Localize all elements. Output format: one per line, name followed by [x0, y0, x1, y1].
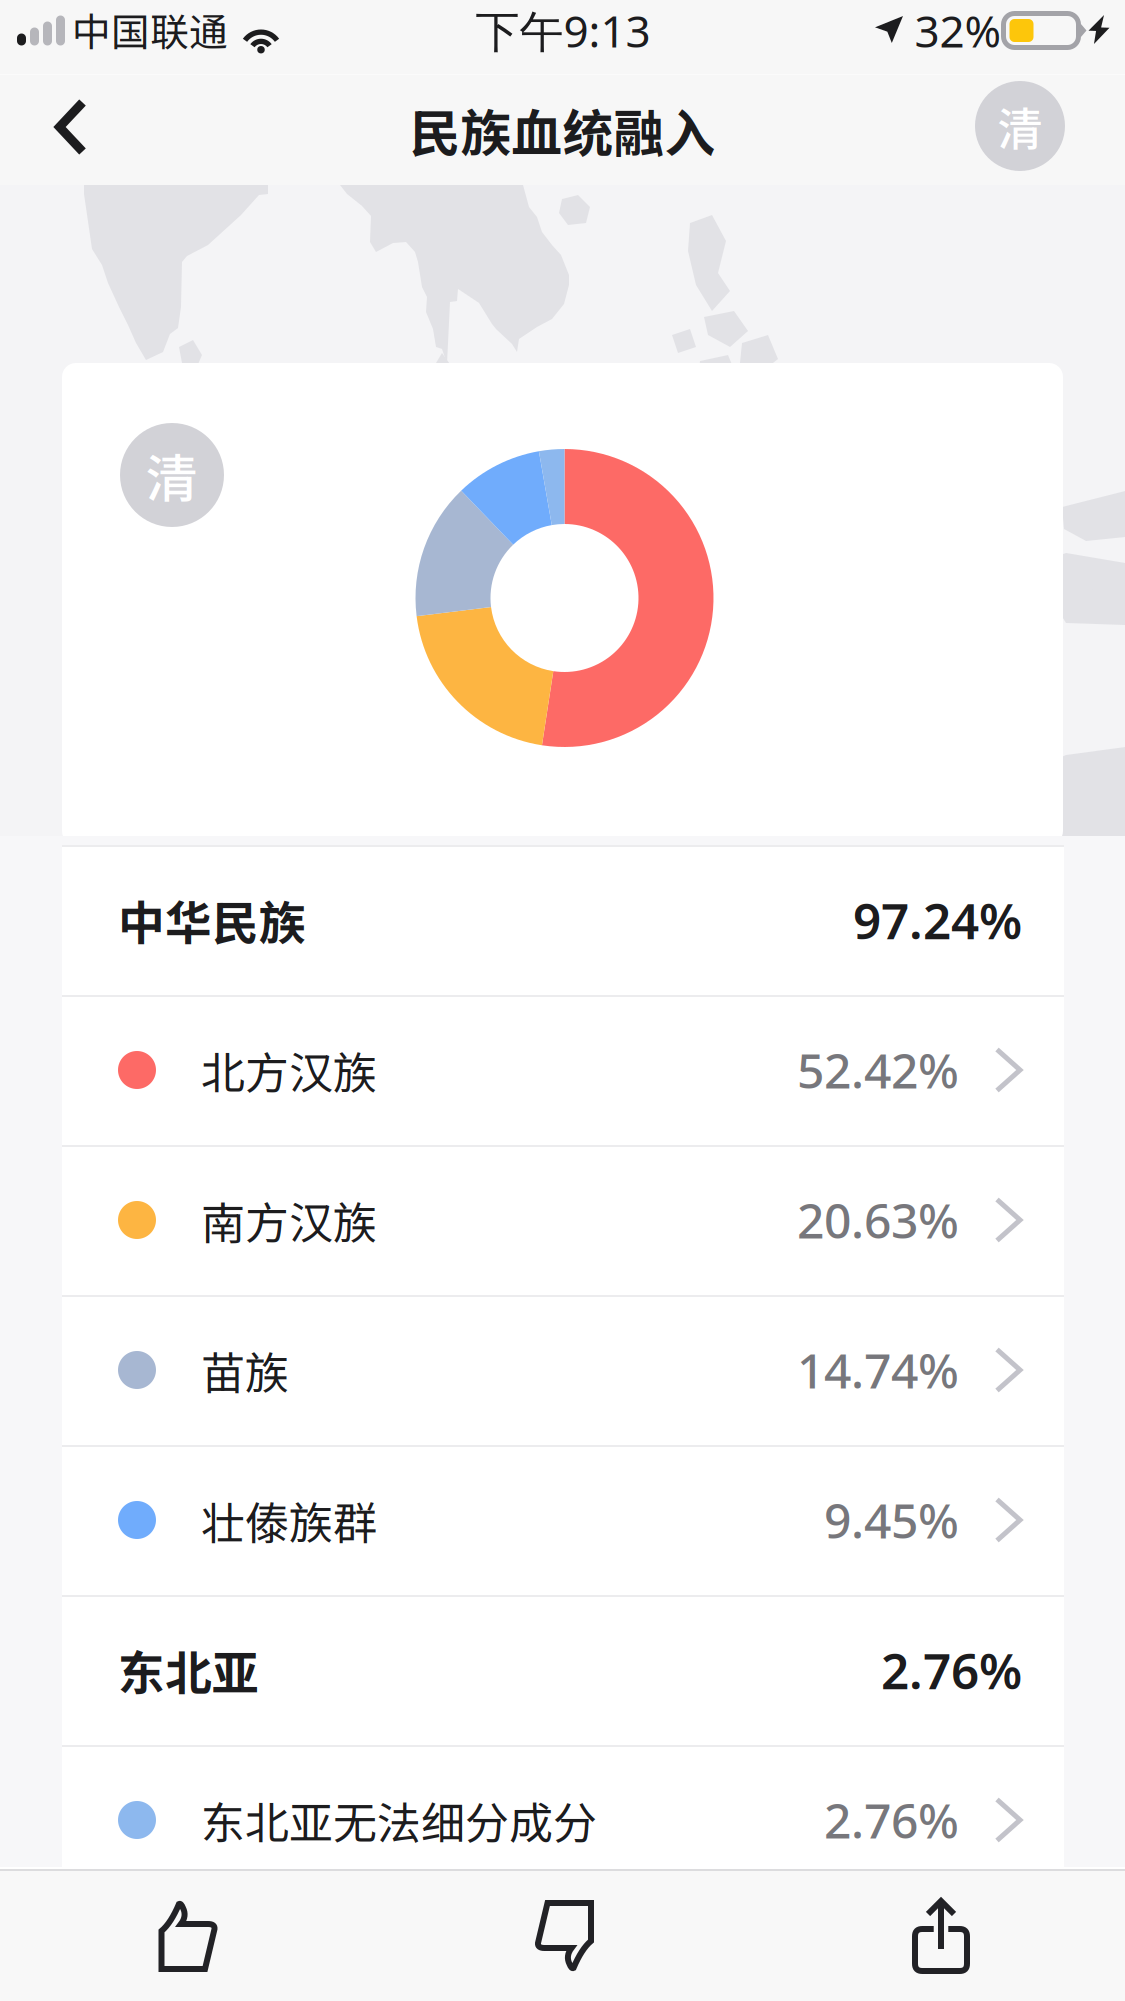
button[interactable]: Dislike: [458, 1870, 670, 2001]
staticText: 苗族: [201, 1338, 289, 1402]
staticText: 中国联通: [72, 1, 228, 57]
staticText: 清: [146, 437, 198, 513]
staticText: 2.76%: [881, 1637, 1022, 1703]
staticText: 东北亚: [118, 1636, 259, 1704]
staticText: 清: [997, 93, 1042, 159]
staticText: 下午9:13: [475, 1, 650, 60]
button[interactable]: 苗族: [62, 1295, 1064, 1445]
button[interactable]: Back: [7, 77, 114, 176]
staticText: 壮傣族群: [201, 1488, 377, 1552]
staticText: 14.74%: [797, 1338, 959, 1402]
staticText: 32%: [914, 1, 1001, 60]
staticText: 南方汉族: [201, 1188, 377, 1252]
button[interactable]: 东北亚无法细分成分: [62, 1745, 1064, 1895]
staticText: 民族血统融入: [409, 93, 715, 167]
staticText: 东北亚无法细分成分: [201, 1788, 597, 1852]
staticText: 9.45%: [824, 1488, 959, 1552]
button[interactable]: Like: [82, 1870, 294, 2001]
staticText: 20.63%: [797, 1188, 959, 1252]
button[interactable]: 清: [965, 71, 1075, 181]
staticText: 97.24%: [853, 887, 1022, 953]
staticText: 2.76%: [824, 1788, 959, 1852]
button[interactable]: 北方汉族: [62, 995, 1064, 1145]
button[interactable]: 壮傣族群: [62, 1445, 1064, 1595]
staticText: 中华民族: [118, 886, 306, 954]
staticText: 52.42%: [797, 1038, 959, 1102]
button[interactable]: Share: [835, 1870, 1047, 2001]
staticText: 北方汉族: [201, 1038, 377, 1102]
button[interactable]: 南方汉族: [62, 1145, 1064, 1295]
